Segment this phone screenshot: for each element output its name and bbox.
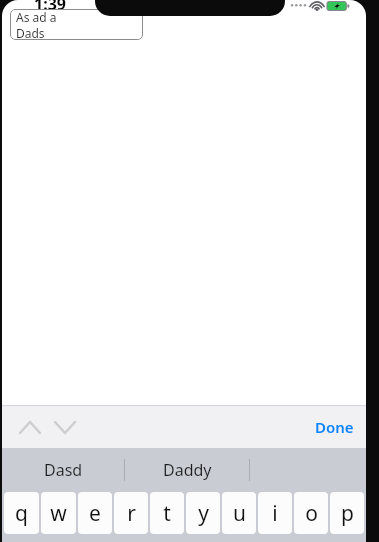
staticText: w xyxy=(50,499,67,528)
staticText: 1:39 xyxy=(34,0,66,15)
staticText: q xyxy=(15,499,28,528)
staticText: p xyxy=(341,499,354,528)
button[interactable]: p xyxy=(330,492,364,534)
button[interactable]: Next field xyxy=(50,412,80,442)
button[interactable]: w xyxy=(41,492,76,534)
button[interactable]: r xyxy=(114,492,148,534)
button[interactable]: Dasd xyxy=(2,448,124,492)
staticText: Dasd xyxy=(44,459,83,481)
staticText: r xyxy=(127,499,136,528)
staticText: i xyxy=(272,499,278,528)
button[interactable]: t xyxy=(150,492,184,534)
button[interactable]: y xyxy=(186,492,220,534)
staticText: Done xyxy=(315,417,354,437)
button[interactable]: Daddy xyxy=(125,448,249,492)
staticText: y xyxy=(198,499,209,528)
staticText: o xyxy=(305,499,318,528)
button[interactable]: o xyxy=(294,492,328,534)
staticText: u xyxy=(233,499,246,528)
staticText: As ad a xyxy=(16,9,57,25)
button[interactable]: Previous field xyxy=(15,412,45,442)
button[interactable]: As ad a xyxy=(10,9,143,40)
staticText: e xyxy=(89,499,101,528)
staticText: Dads xyxy=(16,25,45,40)
staticText: Daddy xyxy=(163,459,212,481)
button[interactable]: e xyxy=(78,492,112,534)
button[interactable]: Done xyxy=(309,412,360,442)
button[interactable]: q xyxy=(4,492,39,534)
button[interactable]: i xyxy=(258,492,292,534)
staticText: t xyxy=(163,499,171,528)
button[interactable]: u xyxy=(222,492,256,534)
